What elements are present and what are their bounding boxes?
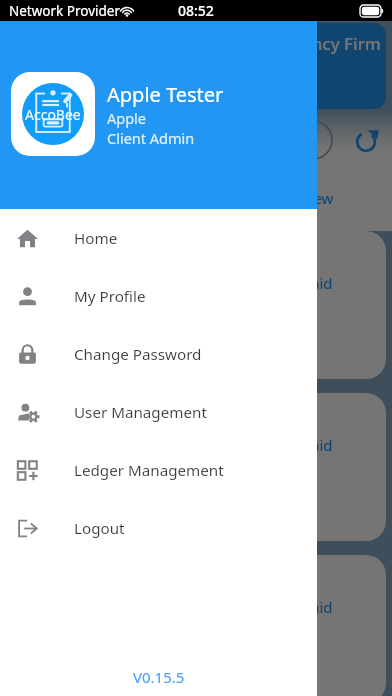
button[interactable]: Logout [0,499,317,557]
staticText: Client Admin [107,128,195,148]
staticText: New [302,188,334,208]
staticText: Logout [74,518,125,539]
staticText: Accounting Agency Firm [184,32,381,55]
staticText: AccoBee [25,105,81,124]
staticText: Home [74,228,118,249]
staticText: Apple Tester [107,81,224,108]
staticText: Ledger Management [74,460,224,481]
staticText: Network Provider [9,2,121,20]
staticText: V0.15.5 [133,667,185,687]
button[interactable]: User Management [0,383,317,441]
staticText: Paid [302,273,333,293]
button[interactable]: Change Password [0,325,317,383]
staticText: Change Password [74,344,202,365]
staticText: Paid [302,435,333,455]
staticText: Apple [107,108,147,128]
staticText: User Management [74,402,207,423]
button[interactable]: Ledger Management [0,441,317,499]
staticText: 08:52 [178,1,214,20]
button[interactable]: Home [0,209,317,267]
button[interactable]: My Profile [0,267,317,325]
staticText: Paid [302,597,333,617]
staticText: My Profile [74,286,146,307]
